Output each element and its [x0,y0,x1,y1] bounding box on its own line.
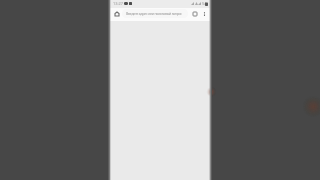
button[interactable]: Home [112,7,122,20]
staticText: 13:27 [113,1,123,6]
button[interactable]: More options [200,7,209,20]
button[interactable]: Введите адрес или поисковый запрос [122,9,188,18]
button[interactable]: Tabs [189,7,200,20]
staticText: Введите адрес или поисковый запрос [126,11,182,16]
staticText: 54 [202,1,207,6]
